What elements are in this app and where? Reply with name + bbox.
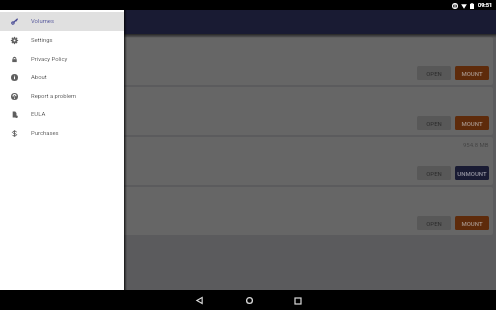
button[interactable]: SD card [3, 87, 493, 135]
button[interactable]: Volumes [0, 12, 124, 31]
staticText: /mnt/media_rw/sdcard1 [11, 53, 79, 61]
button[interactable]: Purchases [0, 124, 124, 142]
button[interactable]: MOUNT [455, 116, 489, 130]
button[interactable]: Home [239, 291, 259, 310]
button[interactable]: OPEN [417, 216, 451, 230]
staticText: OPEN [426, 70, 442, 77]
button[interactable]: About [0, 68, 124, 87]
button[interactable]: Privacy Policy [0, 50, 124, 68]
staticText: OPEN [426, 220, 442, 227]
button[interactable]: UNMOUNT [455, 166, 489, 180]
button[interactable]: OPEN [417, 116, 451, 130]
button[interactable]: MOUNT [455, 216, 489, 230]
staticText: Settings [31, 37, 53, 44]
staticText: Report a problem [31, 93, 77, 100]
staticText: MOUNT [461, 120, 483, 127]
staticText: OPEN [426, 120, 442, 127]
staticText: SD card [11, 91, 40, 102]
button[interactable]: SD card [3, 37, 493, 85]
button[interactable]: OPEN [417, 66, 451, 80]
button[interactable]: Settings [0, 31, 124, 50]
button[interactable]: EULA [0, 105, 124, 124]
button[interactable]: MOUNT [455, 66, 489, 80]
staticText: EULA [31, 111, 46, 118]
button[interactable]: SD card [3, 137, 493, 185]
staticText: About [31, 74, 47, 81]
staticText: Purchases [31, 130, 59, 137]
staticText: Volumes [31, 18, 54, 25]
staticText: MOUNT [461, 220, 483, 227]
staticText: 09:51 [478, 2, 493, 9]
button[interactable]: OPEN [417, 166, 451, 180]
staticText: UNMOUNT [457, 170, 487, 177]
staticText: OPEN [426, 170, 442, 177]
staticText: MOUNT [461, 70, 483, 77]
button[interactable]: Back [189, 291, 209, 310]
button[interactable]: Report a problem [0, 87, 124, 105]
staticText: Privacy Policy [31, 56, 68, 63]
button[interactable]: SD card [3, 187, 493, 235]
button[interactable]: Recent apps [288, 291, 308, 310]
staticText: 954.8 MB [463, 141, 489, 148]
staticText: SD card [11, 41, 40, 52]
